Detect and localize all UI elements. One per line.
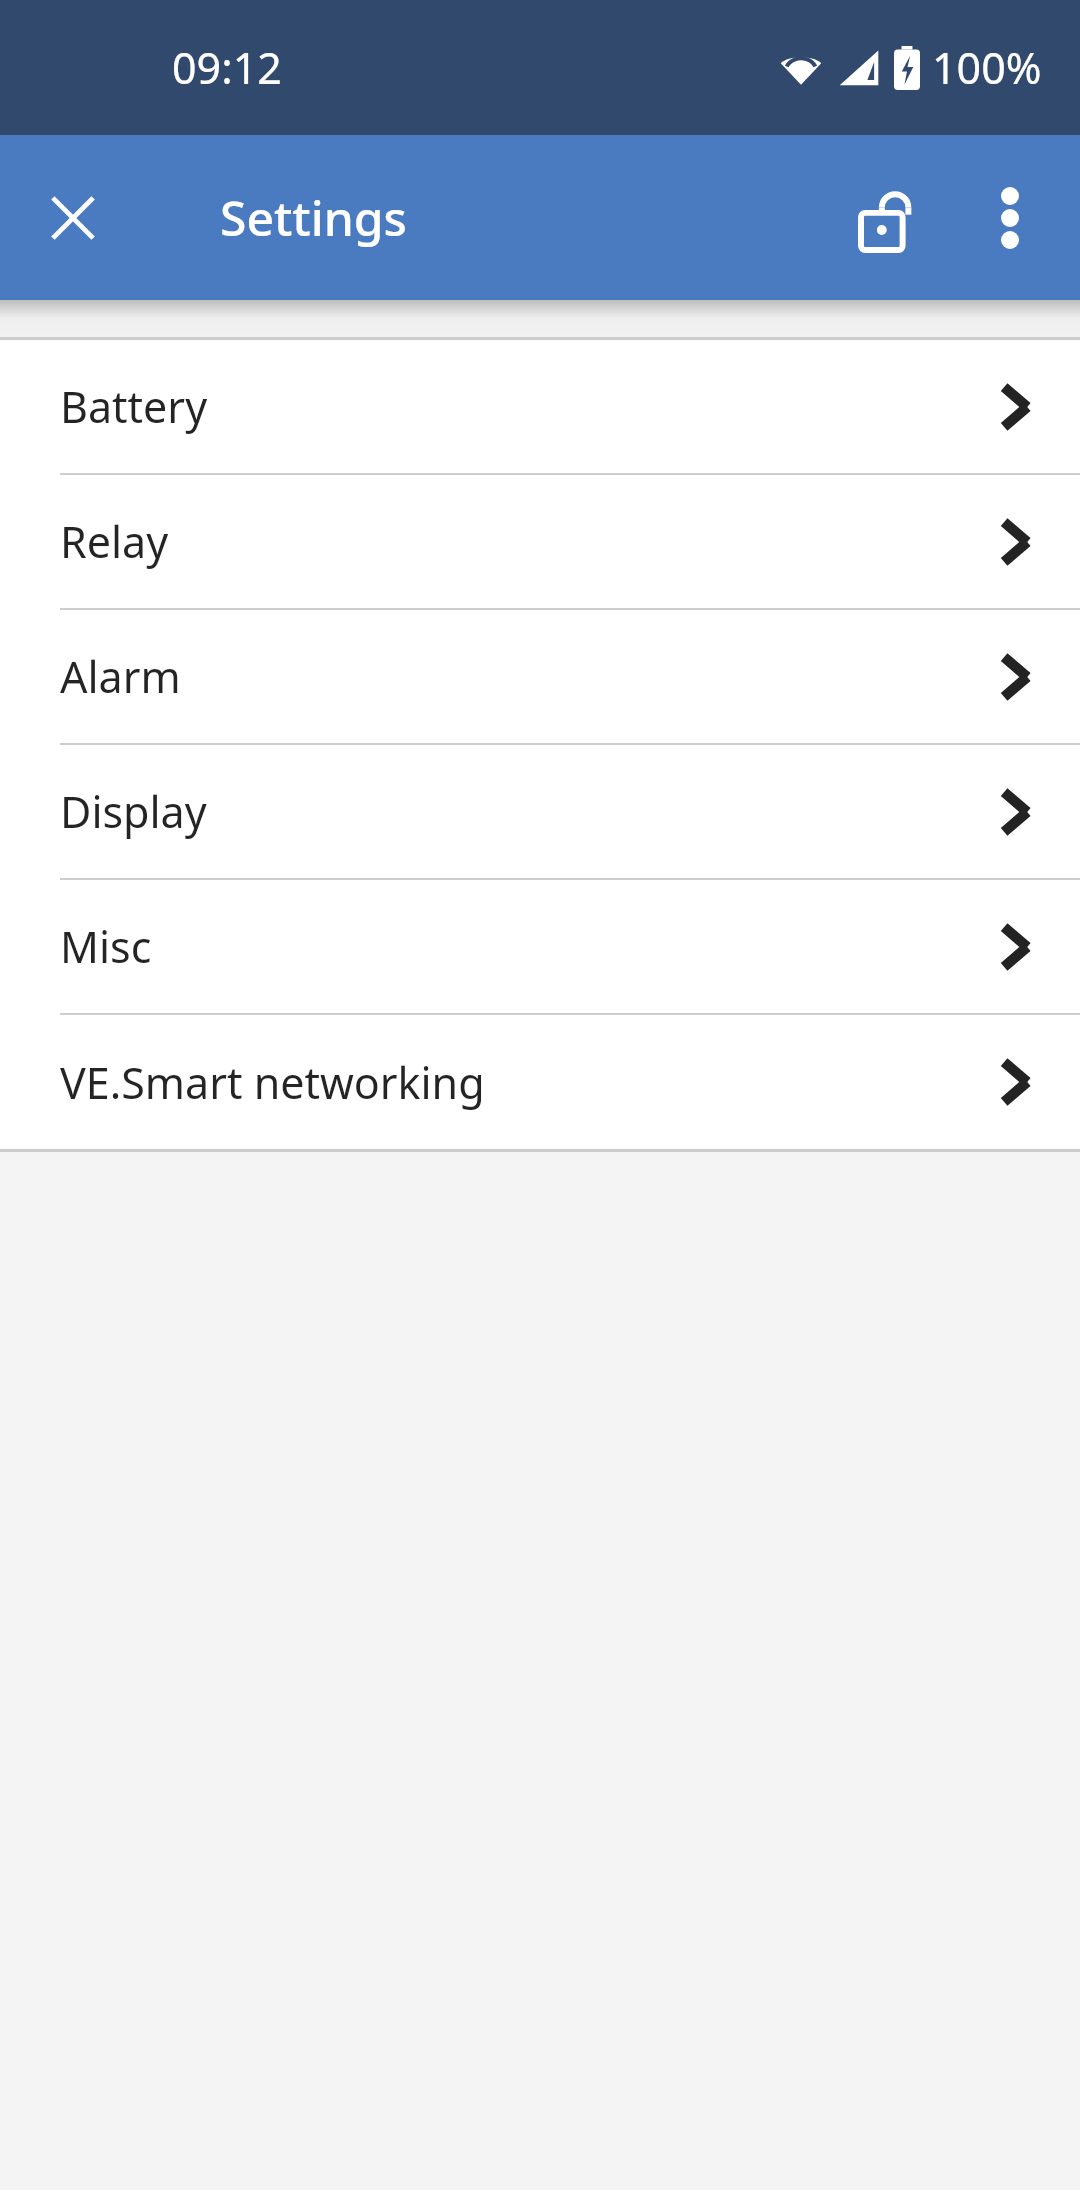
button[interactable]: Relay xyxy=(0,475,1080,610)
staticText: Alarm xyxy=(60,647,181,706)
button[interactable]: Battery xyxy=(0,340,1080,475)
button[interactable]: VE.Smart networking xyxy=(0,1015,1080,1149)
staticText: Display xyxy=(60,782,207,841)
button[interactable]: Misc xyxy=(0,880,1080,1015)
staticText: Relay xyxy=(60,512,169,571)
button[interactable]: Unlock xyxy=(832,163,942,273)
staticText: 09:12 xyxy=(172,38,282,97)
staticText: 100% xyxy=(932,38,1042,97)
staticText: Settings xyxy=(220,185,407,250)
button[interactable]: Display xyxy=(0,745,1080,880)
staticText: VE.Smart networking xyxy=(60,1053,485,1112)
staticText: Battery xyxy=(60,377,208,436)
button[interactable]: Close xyxy=(26,171,120,265)
staticText: Misc xyxy=(60,917,152,976)
button[interactable]: More options xyxy=(960,168,1060,268)
button[interactable]: Alarm xyxy=(0,610,1080,745)
